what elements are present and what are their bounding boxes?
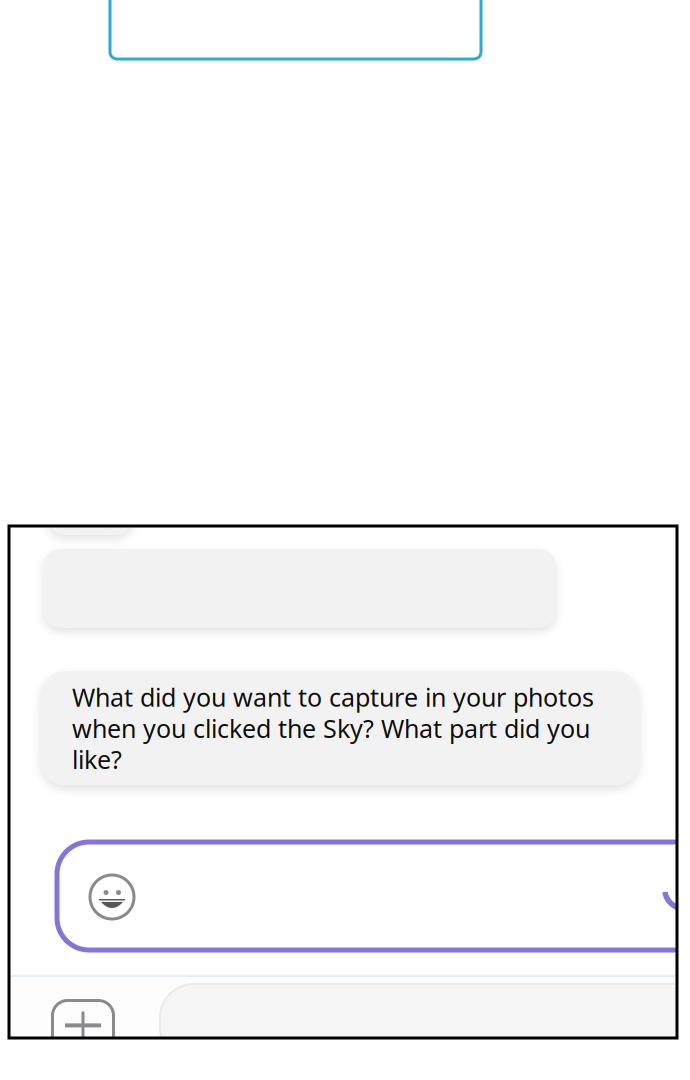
- button[interactable]: Emoji: [90, 875, 134, 919]
- staticText: What did you want to capture in your pho…: [72, 680, 594, 776]
- button[interactable]: Add attachment: [52, 1000, 113, 1061]
